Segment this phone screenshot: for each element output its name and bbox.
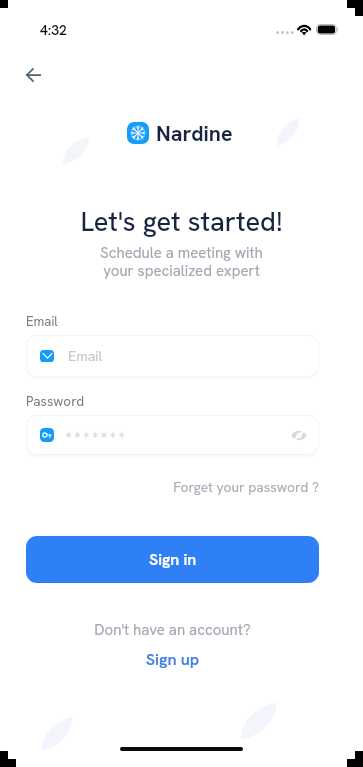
button[interactable]: Show password [286, 422, 312, 448]
staticText: Sign in [149, 549, 197, 570]
staticText: Nardine [156, 119, 233, 147]
staticText: Email [68, 347, 103, 365]
staticText: 4:32 [40, 21, 67, 39]
staticText: Don't have an account? [26, 620, 319, 640]
staticText: Password [26, 392, 85, 410]
button[interactable]: Show password [26, 415, 319, 455]
button[interactable]: Email [26, 335, 319, 377]
staticText: Let's get started! [0, 204, 363, 239]
button[interactable]: Back [15, 57, 51, 93]
staticText: Email [26, 313, 58, 330]
button[interactable]: Forget your password ? [26, 478, 319, 496]
button[interactable]: Sign in [26, 536, 319, 583]
staticText: Schedule a meeting with your specialized… [0, 243, 363, 280]
button[interactable]: Sign up [26, 649, 319, 670]
